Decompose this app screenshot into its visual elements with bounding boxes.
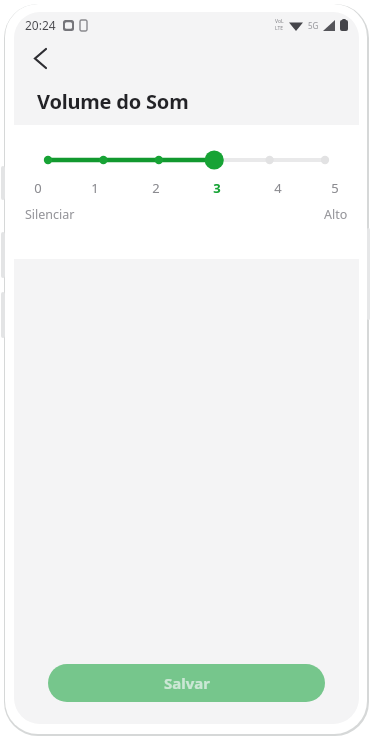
staticText: LTE xyxy=(275,25,284,32)
staticText: Salvar xyxy=(164,673,210,693)
staticText: 3 xyxy=(213,179,221,197)
button[interactable] xyxy=(34,147,339,173)
staticText: Volume do Som xyxy=(37,88,189,115)
staticText: 4 xyxy=(274,179,282,197)
staticText: Silenciar xyxy=(25,206,75,223)
staticText: 20:24 xyxy=(25,17,56,33)
staticText: Alto xyxy=(324,206,348,223)
staticText: 0 xyxy=(34,179,42,197)
staticText: 5 xyxy=(331,179,339,197)
staticText: 2 xyxy=(152,179,160,197)
staticText: 5G xyxy=(308,20,319,31)
button[interactable]: Salvar xyxy=(48,664,325,702)
button[interactable]: Back xyxy=(20,38,60,78)
staticText: VoL xyxy=(275,18,284,25)
staticText: 1 xyxy=(91,179,99,197)
